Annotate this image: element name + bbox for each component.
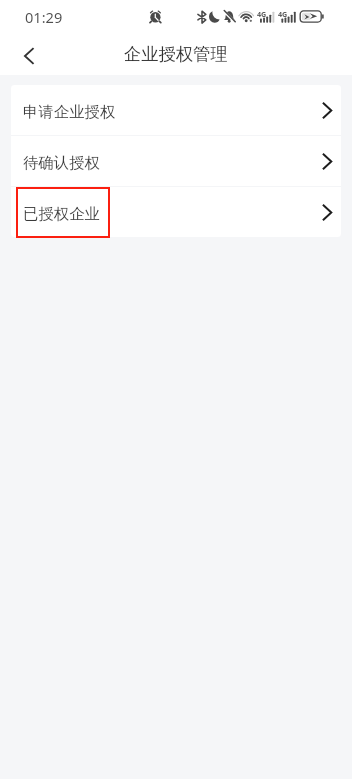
staticText: 申请企业授权 xyxy=(23,102,116,121)
staticText: 01:29 xyxy=(25,7,63,27)
button[interactable]: Back xyxy=(11,38,47,74)
button[interactable]: 已授权企业 xyxy=(11,187,341,237)
staticText: 已授权企业 xyxy=(23,204,100,223)
staticText: 4G xyxy=(257,9,267,19)
button[interactable]: 申请企业授权 xyxy=(11,85,341,135)
staticText: 4G xyxy=(278,9,288,19)
staticText: 企业授权管理 xyxy=(124,43,228,65)
staticText: 待确认授权 xyxy=(23,153,100,172)
button[interactable]: 待确认授权 xyxy=(11,136,341,186)
